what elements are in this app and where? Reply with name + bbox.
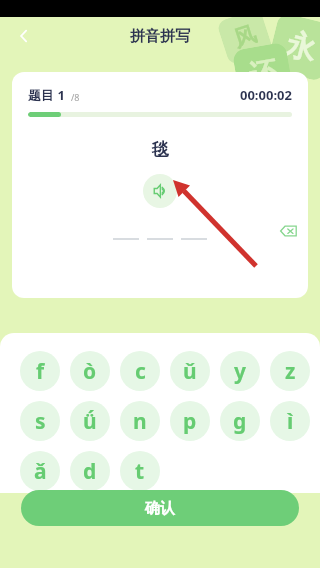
button[interactable]: Back: [8, 20, 40, 52]
button[interactable]: n: [120, 401, 160, 441]
staticText: 风: [230, 20, 260, 54]
staticText: g: [233, 407, 247, 436]
staticText: ò: [83, 357, 97, 386]
staticText: n: [133, 407, 147, 436]
staticText: 还: [246, 54, 280, 93]
button[interactable]: Play audio: [143, 174, 177, 208]
staticText: 拼音拼写: [130, 27, 190, 46]
button[interactable]: ǎ: [20, 451, 60, 491]
button[interactable]: d: [70, 451, 110, 491]
staticText: z: [285, 357, 296, 386]
button[interactable]: ǔ: [170, 351, 210, 391]
button[interactable]: 确认: [21, 490, 299, 526]
staticText: d: [83, 457, 97, 486]
staticText: ì: [287, 407, 294, 436]
button[interactable]: g: [220, 401, 260, 441]
staticText: f: [36, 357, 45, 386]
staticText: 00:00:02: [240, 86, 292, 104]
button[interactable]: ǘ: [70, 401, 110, 441]
staticText: s: [35, 407, 46, 436]
staticText: c: [135, 357, 146, 386]
button[interactable]: Backspace: [276, 218, 302, 244]
staticText: y: [234, 357, 246, 386]
staticText: 永: [282, 25, 320, 69]
button[interactable]: ò: [70, 351, 110, 391]
button[interactable]: c: [120, 351, 160, 391]
button[interactable]: z: [270, 351, 310, 391]
staticText: 确认: [145, 499, 175, 518]
button[interactable]: ì: [270, 401, 310, 441]
button[interactable]: s: [20, 401, 60, 441]
staticText: ǎ: [34, 457, 47, 486]
staticText: 毯: [12, 139, 308, 160]
button[interactable]: f: [20, 351, 60, 391]
button[interactable]: p: [170, 401, 210, 441]
staticText: /8: [71, 91, 80, 103]
staticText: ǘ: [83, 407, 97, 436]
staticText: ǔ: [183, 357, 197, 386]
button[interactable]: t: [120, 451, 160, 491]
staticText: t: [135, 457, 145, 486]
button[interactable]: y: [220, 351, 260, 391]
staticText: p: [183, 407, 197, 436]
staticText: 题目 1: [28, 86, 65, 104]
